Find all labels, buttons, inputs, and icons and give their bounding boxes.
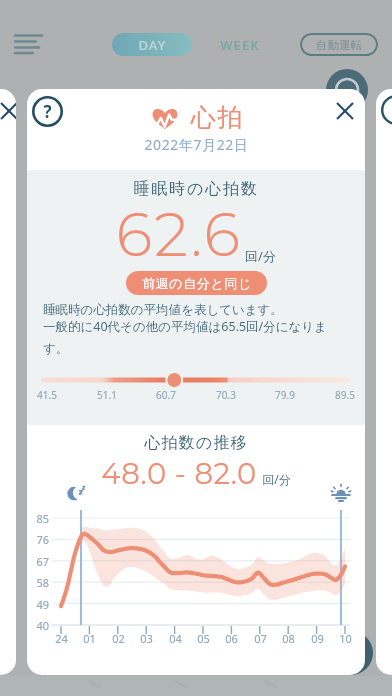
- staticText: 04: [169, 631, 182, 646]
- staticText: 自動運転: [316, 38, 362, 52]
- staticText: 51.1: [97, 388, 117, 402]
- button[interactable]: Add: [329, 631, 373, 675]
- staticText: 回/分: [245, 247, 276, 265]
- staticText: 06: [225, 631, 238, 646]
- button[interactable]: WEEK: [210, 33, 270, 56]
- staticText: 一般的に40代その他の平均値は65.5回/分になりま す。: [43, 318, 355, 357]
- staticText: 前週の自分と同じ: [142, 275, 252, 291]
- staticText: 62.6: [116, 198, 242, 271]
- staticText: 41.5: [37, 388, 57, 402]
- staticText: 05: [197, 631, 210, 646]
- button[interactable]: Auto drive: [326, 69, 368, 111]
- staticText: 心拍: [190, 102, 243, 133]
- staticText: 心拍数の推移: [27, 433, 365, 453]
- staticText: 79.9: [275, 388, 295, 402]
- staticText: 睡眠時の心拍数の平均値を表しています。: [43, 302, 355, 318]
- staticText: 07: [254, 631, 267, 646]
- staticText: 89.5: [335, 388, 355, 402]
- button[interactable]: Menu: [6, 26, 42, 62]
- staticText: ?: [43, 100, 52, 123]
- staticText: 09: [311, 631, 324, 646]
- staticText: DAY: [138, 36, 167, 54]
- button[interactable]: 前週の自分と同じ: [126, 271, 267, 295]
- button[interactable]: DAY: [112, 33, 192, 56]
- staticText: 10: [339, 631, 352, 646]
- staticText: 08: [282, 631, 295, 646]
- staticText: 49: [36, 597, 49, 612]
- staticText: 67: [36, 554, 49, 569]
- staticText: 01: [83, 631, 96, 646]
- staticText: 02: [112, 631, 125, 646]
- staticText: 2022年7月22日: [144, 135, 249, 154]
- staticText: 回/分: [262, 471, 291, 487]
- staticText: 70.3: [216, 388, 236, 402]
- button[interactable]: Close: [328, 94, 361, 127]
- staticText: 60.7: [156, 388, 176, 402]
- staticText: 76: [36, 532, 49, 547]
- button[interactable]: 自動運転: [300, 33, 378, 56]
- staticText: 48.0 - 82.0: [101, 456, 257, 491]
- staticText: 睡眠時の心拍数: [27, 179, 365, 199]
- button[interactable]: Help: [30, 94, 64, 128]
- staticText: 58: [36, 575, 49, 590]
- staticText: 24: [55, 631, 68, 646]
- staticText: WEEK: [220, 36, 260, 54]
- staticText: 03: [140, 631, 153, 646]
- staticText: 40: [36, 618, 49, 633]
- staticText: 85: [36, 511, 49, 526]
